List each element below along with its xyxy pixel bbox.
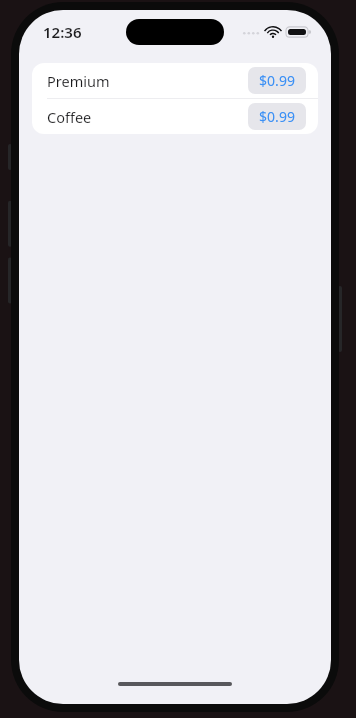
staticText: $0.99 xyxy=(259,107,295,126)
staticText: 12:36 xyxy=(43,22,82,42)
button[interactable]: Coffee xyxy=(32,99,318,134)
button[interactable]: $0.99 xyxy=(248,103,306,130)
staticText: Coffee xyxy=(47,107,92,127)
staticText: $0.99 xyxy=(259,71,295,90)
staticText: Premium xyxy=(47,71,110,91)
button[interactable]: Premium xyxy=(32,63,318,98)
button[interactable]: $0.99 xyxy=(248,67,306,94)
